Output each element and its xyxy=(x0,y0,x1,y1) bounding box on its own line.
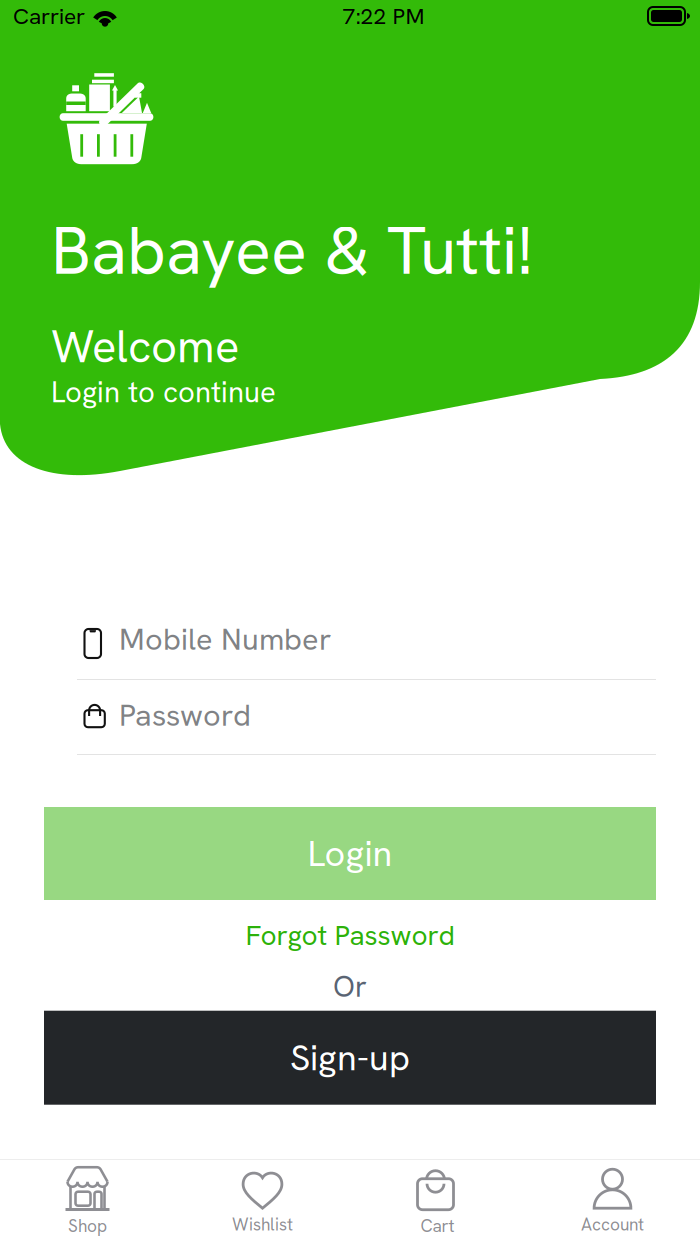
staticText: Sign-up xyxy=(290,1034,410,1081)
button[interactable]: Account xyxy=(525,1160,700,1244)
staticText: Login xyxy=(307,830,392,877)
button[interactable]: Shop xyxy=(0,1159,175,1244)
staticText: Account xyxy=(581,1213,644,1236)
staticText: Carrier xyxy=(13,1,85,31)
button[interactable]: Mobile Number xyxy=(0,612,700,680)
button[interactable]: Wishlist xyxy=(175,1160,350,1244)
staticText: Shop xyxy=(68,1215,107,1237)
staticText: Babayee & Tutti! xyxy=(51,207,533,294)
button[interactable]: Sign-up xyxy=(44,1011,656,1105)
staticText: Cart xyxy=(420,1215,454,1237)
staticText: Wishlist xyxy=(232,1213,293,1236)
staticText: 7:22 PM xyxy=(342,1,424,31)
staticText: Password xyxy=(119,695,251,735)
button[interactable]: Or xyxy=(0,961,700,1006)
button[interactable]: Cart xyxy=(350,1159,525,1244)
staticText: Welcome xyxy=(51,317,239,376)
staticText: Mobile Number xyxy=(119,619,331,659)
button[interactable]: Password xyxy=(0,680,700,755)
staticText: Forgot Password xyxy=(245,917,454,953)
staticText: Or xyxy=(333,967,367,1006)
button[interactable]: Forgot Password xyxy=(0,900,700,961)
staticText: Login to continue xyxy=(51,373,276,411)
button[interactable]: Login xyxy=(44,807,656,900)
